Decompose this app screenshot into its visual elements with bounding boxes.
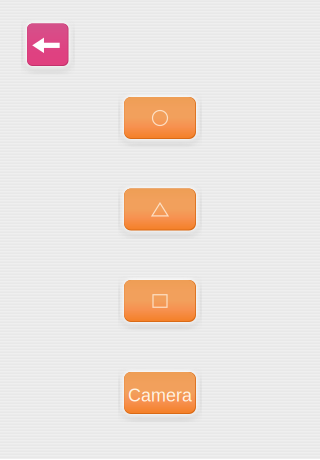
button[interactable]: Circle (124, 97, 196, 139)
staticText: Camera (128, 385, 192, 405)
button[interactable]: Square (124, 280, 196, 322)
button[interactable]: Triangle (124, 188, 196, 230)
button[interactable]: Camera (124, 372, 196, 414)
button[interactable]: Back (27, 23, 68, 66)
